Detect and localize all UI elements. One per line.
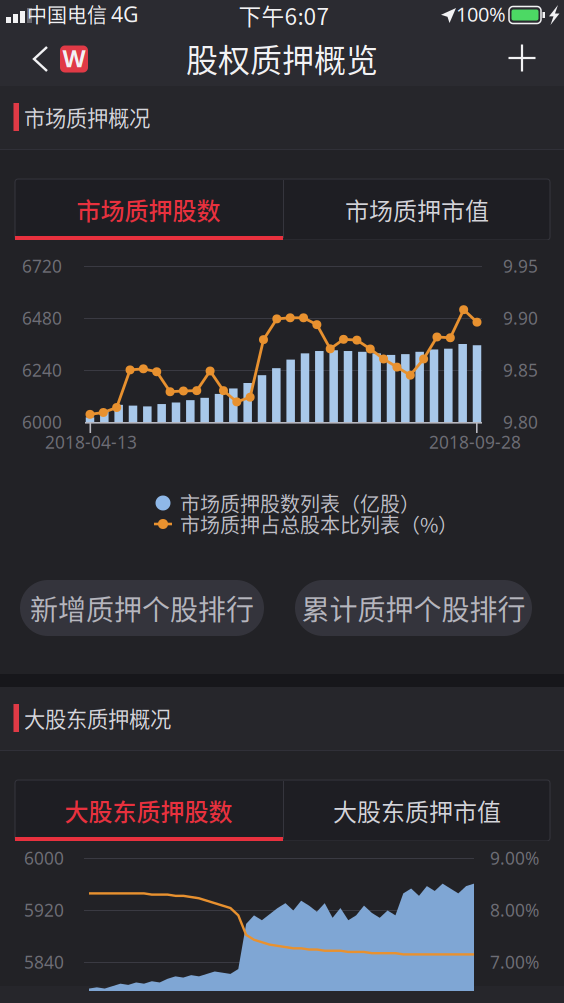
staticText: 9.85 — [503, 358, 538, 381]
staticText: 9.90 — [503, 306, 538, 329]
staticText: 大股东质押概况 — [24, 703, 171, 733]
staticText: 9.80 — [503, 410, 538, 433]
staticText: 2018-04-13 — [45, 430, 137, 453]
staticText: 4G — [111, 0, 139, 28]
staticText: 市场质押股数 — [76, 192, 220, 227]
staticText: 累计质押个股排行 — [301, 588, 525, 628]
staticText: 9.95 — [503, 254, 538, 277]
button[interactable]: 新增质押个股排行 — [20, 580, 264, 636]
staticText: 6720 — [22, 254, 62, 277]
staticText: 7.00% — [490, 950, 539, 973]
button[interactable]: 市场质押股数 — [15, 179, 282, 240]
staticText: 市场质押占总股本比列表（%） — [180, 509, 458, 538]
staticText: 下午6:07 — [238, 0, 329, 31]
staticText: 大股东质押股数 — [64, 793, 232, 828]
staticText: 5920 — [24, 898, 64, 921]
staticText: 市场质押市值 — [345, 192, 489, 227]
button[interactable]: 累计质押个股排行 — [295, 580, 532, 636]
button[interactable]: 大股东质押市值 — [284, 780, 550, 841]
staticText: 新增质押个股排行 — [30, 588, 254, 628]
staticText: 9.00% — [490, 846, 539, 869]
staticText: W — [62, 42, 85, 74]
staticText: 大股东质押市值 — [333, 793, 501, 828]
staticText: 100% — [456, 1, 506, 27]
staticText: 6000 — [24, 846, 64, 869]
button[interactable]: 大股东质押股数 — [15, 780, 282, 841]
staticText: 6000 — [22, 410, 62, 433]
staticText: 6480 — [22, 306, 62, 329]
staticText: 5840 — [24, 950, 64, 973]
staticText: 2018-09-28 — [429, 430, 521, 453]
button[interactable]: Add — [494, 30, 550, 86]
staticText: 6240 — [22, 358, 62, 381]
staticText: 市场质押股数列表（亿股） — [180, 488, 420, 517]
staticText: 中国电信 — [27, 0, 107, 28]
staticText: 8.00% — [490, 898, 539, 921]
button[interactable]: Back — [0, 30, 100, 86]
button[interactable]: 市场质押市值 — [284, 179, 550, 240]
staticText: 市场质押概况 — [24, 102, 150, 132]
staticText: 股权质押概览 — [186, 35, 378, 81]
